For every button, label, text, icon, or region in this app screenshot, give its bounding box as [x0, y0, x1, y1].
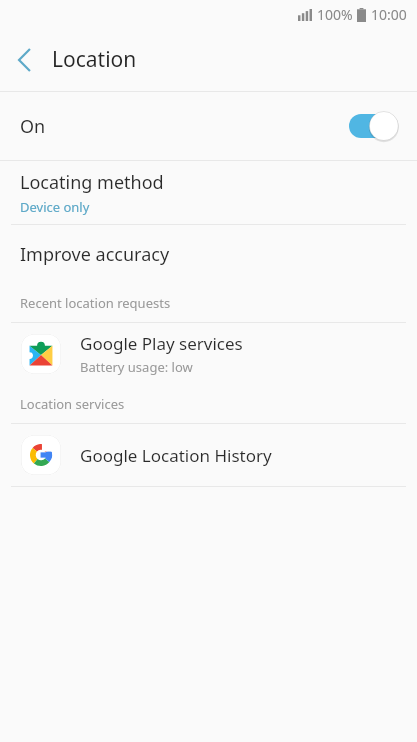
button[interactable]: Locating method: [0, 161, 417, 224]
staticText: Improve accuracy: [20, 242, 170, 267]
staticText: Locating method: [20, 170, 164, 195]
button[interactable]: Location toggle, on: [349, 111, 401, 141]
staticText: Google Location History: [80, 444, 272, 467]
button[interactable]: On: [0, 92, 417, 160]
button[interactable]: Improve accuracy: [0, 225, 417, 284]
staticText: Location: [52, 45, 137, 74]
staticText: Google Play services: [80, 332, 243, 355]
staticText: Recent location requests: [20, 294, 171, 312]
button[interactable]: Google Location History: [0, 424, 417, 486]
staticText: On: [20, 114, 349, 139]
button[interactable]: Back: [0, 36, 48, 84]
button[interactable]: Google Play services: [0, 323, 417, 385]
staticText: Device only: [20, 198, 90, 216]
staticText: 10:00: [371, 5, 407, 24]
staticText: Location services: [20, 395, 125, 413]
staticText: Battery usage: low: [80, 358, 193, 376]
staticText: 100%: [317, 5, 353, 24]
